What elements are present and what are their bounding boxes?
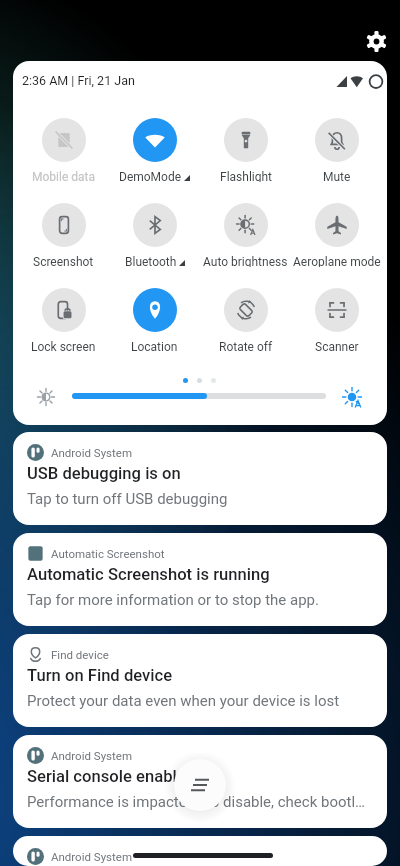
staticText: Scanner <box>315 340 359 352</box>
staticText: Mobile data <box>32 170 95 182</box>
staticText: Auto brightness <box>203 255 288 267</box>
button[interactable]: Android System <box>13 836 387 866</box>
staticText: DemoMode <box>119 170 182 182</box>
staticText: Flashlight <box>220 170 272 182</box>
staticText: Automatic Screenshot is running <box>27 565 270 584</box>
button[interactable]: DemoMode <box>109 97 200 182</box>
button[interactable]: Mute <box>291 97 382 182</box>
button[interactable]: Automatic Screenshot <box>13 533 387 626</box>
staticText: Aeroplane mode <box>293 255 381 267</box>
button[interactable]: Lock screen <box>18 267 109 352</box>
button[interactable]: Screenshot <box>18 182 109 267</box>
button[interactable]: Android System <box>13 735 387 828</box>
staticText: Performance is impacted. To disable, che… <box>27 793 366 811</box>
staticText: Protect your data even when your device … <box>27 692 340 710</box>
staticText: Turn on Find device <box>27 666 173 685</box>
staticText: Mute <box>323 170 351 182</box>
button[interactable]: Settings <box>360 25 392 57</box>
button[interactable]: Android System <box>13 432 387 525</box>
button[interactable]: Find device <box>13 634 387 727</box>
staticText: Android System <box>51 749 132 762</box>
staticText: Tap for more information or to stop the … <box>27 591 319 609</box>
staticText: Find device <box>51 648 109 661</box>
button[interactable]: Location <box>109 267 200 352</box>
button[interactable]: Scanner <box>291 267 382 352</box>
staticText: Tap to turn off USB debugging <box>27 490 228 508</box>
staticText: USB debugging is on <box>27 464 181 483</box>
staticText: Automatic Screenshot <box>51 547 165 560</box>
button[interactable]: Rotate off <box>200 267 291 352</box>
button[interactable]: Manage notifications <box>174 759 226 811</box>
staticText: Serial console enabled <box>27 767 196 786</box>
staticText: Android System <box>51 446 132 459</box>
staticText: Bluetooth <box>125 255 177 267</box>
staticText: Rotate off <box>219 340 273 352</box>
staticText: Location <box>131 340 178 352</box>
button[interactable]: Auto brightness <box>200 182 291 267</box>
staticText: Android System <box>51 850 132 863</box>
staticText: Lock screen <box>31 340 96 352</box>
button[interactable]: Flashlight <box>200 97 291 182</box>
button[interactable]: Bluetooth <box>109 182 200 267</box>
button[interactable]: Aeroplane mode <box>291 182 382 267</box>
staticText: 2:36 AM | Fri, 21 Jan <box>22 73 135 88</box>
button[interactable]: Mobile data <box>18 97 109 182</box>
staticText: Screenshot <box>33 255 94 267</box>
